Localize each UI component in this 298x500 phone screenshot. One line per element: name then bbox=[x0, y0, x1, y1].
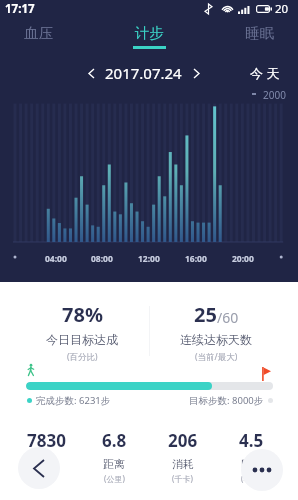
staticText: 步数 bbox=[35, 457, 57, 471]
staticText: 计步 bbox=[135, 24, 164, 42]
staticText: 20 bbox=[275, 1, 289, 17]
staticText: 今 天 bbox=[250, 64, 280, 82]
staticText: 25 bbox=[194, 301, 217, 328]
staticText: (小时) bbox=[241, 473, 262, 484]
staticText: (当前/最大) bbox=[195, 351, 238, 363]
staticText: 目标步数: 8000步 bbox=[189, 394, 264, 407]
staticText: 睡眠 bbox=[245, 24, 274, 42]
staticText: 16:00 bbox=[185, 253, 207, 265]
staticText: 12:00 bbox=[138, 253, 160, 265]
button[interactable]: 计步 bbox=[127, 23, 172, 49]
staticText: 7830 bbox=[27, 429, 66, 452]
staticText: 08:00 bbox=[91, 253, 113, 265]
staticText: (百分比) bbox=[67, 351, 98, 363]
staticText: 17:17 bbox=[5, 1, 35, 17]
button[interactable]: Next day bbox=[188, 65, 204, 81]
staticText: 2017.07.24 bbox=[105, 63, 182, 83]
staticText: 时长 bbox=[241, 457, 263, 471]
staticText: 距离 bbox=[103, 457, 125, 471]
staticText: 04:00 bbox=[45, 253, 67, 265]
button[interactable]: 4.5 bbox=[217, 429, 286, 484]
button[interactable]: 血压 bbox=[16, 23, 61, 49]
button[interactable]: 睡眠 bbox=[237, 23, 282, 49]
staticText: 4.5 bbox=[239, 429, 264, 452]
button[interactable]: Back bbox=[18, 447, 60, 489]
staticText: 血压 bbox=[24, 24, 53, 42]
staticText: 今日目标达成 bbox=[46, 332, 118, 347]
staticText: 完成步数: 6231步 bbox=[36, 394, 111, 407]
staticText: 20:00 bbox=[232, 253, 254, 265]
staticText: 2000 bbox=[263, 88, 286, 102]
staticText: (公里) bbox=[104, 473, 125, 484]
button[interactable]: 今 天 bbox=[250, 64, 280, 82]
staticText: (千卡) bbox=[172, 473, 193, 484]
button[interactable]: 7830 bbox=[12, 429, 80, 484]
button[interactable]: Previous day bbox=[83, 65, 99, 81]
staticText: 消耗 bbox=[172, 457, 194, 471]
button[interactable]: 6.8 bbox=[80, 429, 148, 484]
staticText: 206 bbox=[168, 429, 198, 452]
button[interactable]: 206 bbox=[148, 429, 217, 484]
staticText: (步) bbox=[40, 473, 53, 484]
staticText: 6.8 bbox=[102, 429, 127, 452]
staticText: /60 bbox=[217, 308, 239, 327]
staticText: 78% bbox=[62, 301, 103, 328]
staticText: 连续达标天数 bbox=[180, 332, 252, 347]
button[interactable]: More options bbox=[241, 449, 283, 491]
